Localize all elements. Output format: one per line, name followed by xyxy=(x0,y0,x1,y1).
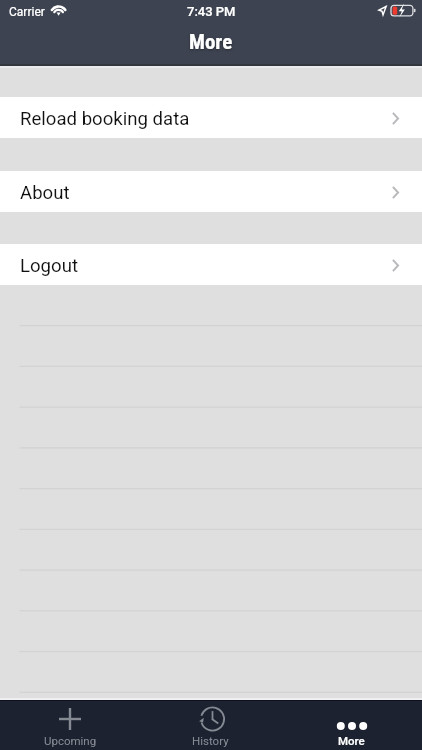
button[interactable]: History xyxy=(140,701,281,750)
staticText: More xyxy=(338,734,365,747)
button[interactable]: Upcoming xyxy=(0,701,140,750)
button[interactable]: Reload booking data xyxy=(0,97,422,138)
staticText: About xyxy=(20,182,70,204)
button[interactable]: More xyxy=(281,701,422,750)
staticText: Logout xyxy=(20,255,78,277)
staticText: 7:43 PM xyxy=(187,4,236,19)
button[interactable]: About xyxy=(0,171,422,212)
staticText: History xyxy=(192,734,229,747)
staticText: Carrier xyxy=(9,5,45,19)
staticText: More xyxy=(189,30,233,55)
staticText: Upcoming xyxy=(44,734,97,747)
staticText: Reload booking data xyxy=(20,108,190,130)
button[interactable]: Logout xyxy=(0,244,422,285)
